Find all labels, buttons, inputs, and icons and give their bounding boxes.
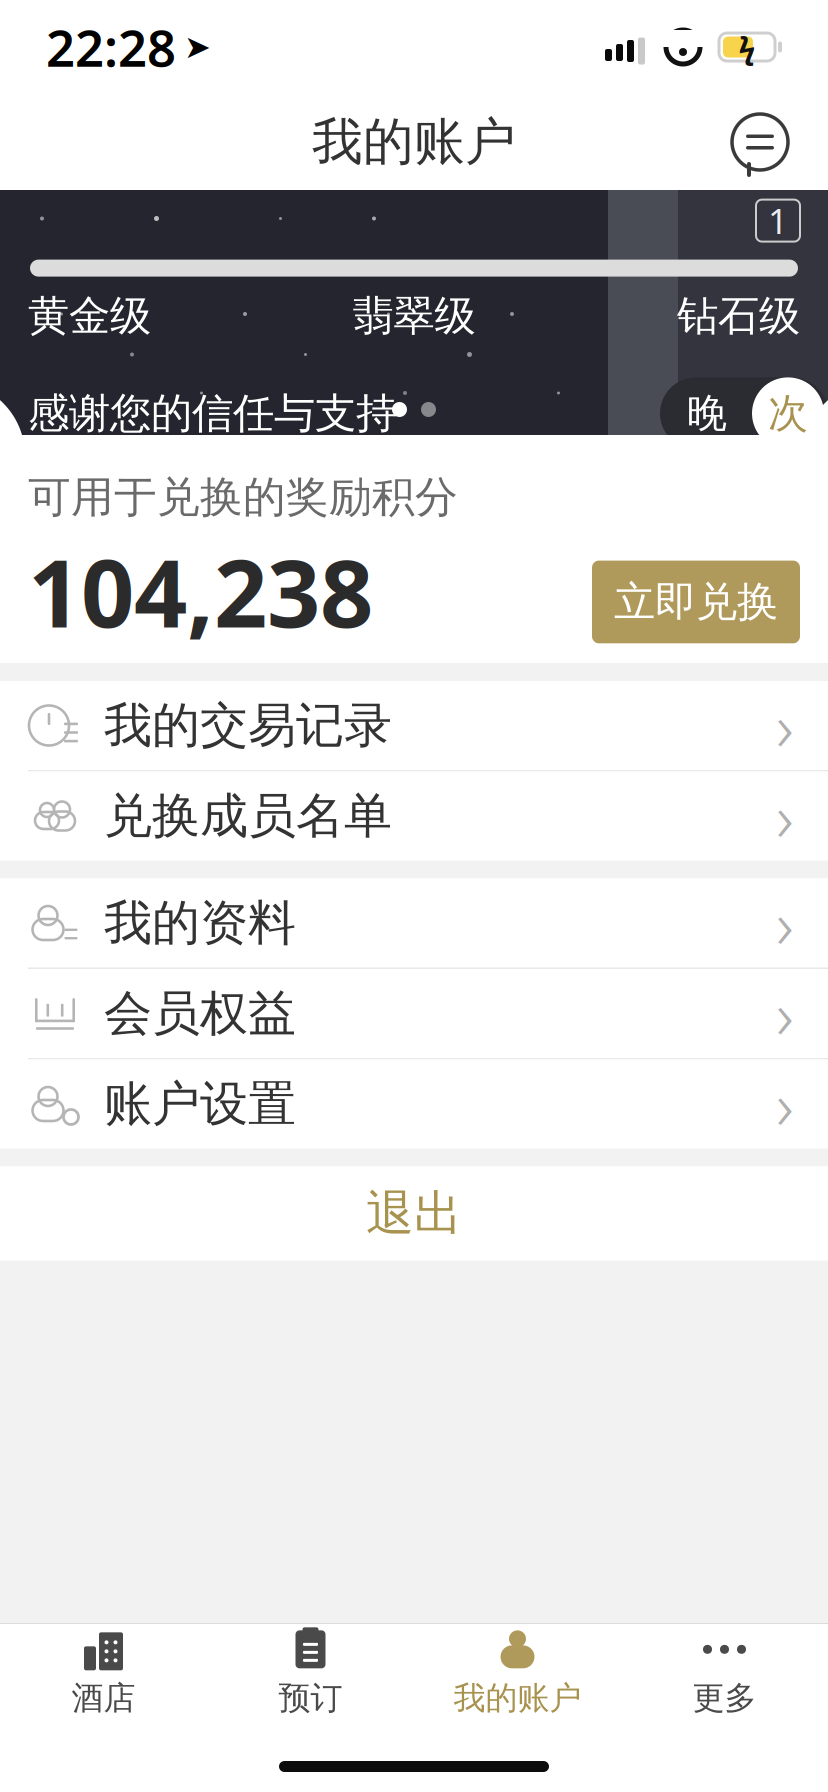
button[interactable]: 我的交易记录: [0, 681, 828, 771]
button[interactable]: 账户设置: [0, 1059, 828, 1148]
staticText: 可用于兑换的奖励积分: [28, 471, 458, 523]
staticText: 钻石级: [677, 291, 800, 341]
staticText: 次: [768, 389, 808, 438]
button[interactable]: 会员权益: [0, 969, 828, 1059]
staticText: 我的资料: [104, 893, 296, 952]
button[interactable]: 我的资料: [0, 878, 828, 969]
staticText: 感谢您的信任与支持: [28, 388, 397, 439]
button[interactable]: 我的账户: [414, 1624, 621, 1722]
staticText: 黄金级: [28, 291, 151, 341]
staticText: ›: [776, 879, 794, 967]
staticText: 我的账户: [312, 111, 516, 173]
button[interactable]: 预订: [207, 1624, 414, 1722]
staticText: 我的交易记录: [104, 696, 392, 755]
staticText: 我的账户: [453, 1678, 581, 1718]
staticText: ›: [776, 969, 794, 1058]
staticText: 翡翠级: [352, 291, 475, 341]
staticText: 1: [768, 198, 788, 244]
staticText: 预订: [278, 1678, 342, 1718]
staticText: ›: [776, 1060, 794, 1148]
staticText: 退出: [366, 1184, 462, 1243]
staticText: ›: [776, 772, 794, 860]
button[interactable]: 退出: [0, 1166, 828, 1260]
button[interactable]: 立即兑换: [592, 561, 800, 643]
button[interactable]: 兑换成员名单: [0, 771, 828, 860]
staticText: 会员权益: [104, 984, 296, 1043]
staticText: 账户设置: [104, 1074, 296, 1133]
staticText: 晚: [687, 389, 727, 438]
staticText: 兑换成员名单: [104, 786, 392, 845]
button[interactable]: 酒店: [0, 1624, 207, 1722]
staticText: 更多: [692, 1678, 756, 1718]
staticText: 22:28: [46, 13, 176, 81]
staticText: 酒店: [71, 1678, 135, 1718]
staticText: 立即兑换: [614, 577, 778, 627]
staticText: ➤: [184, 29, 211, 65]
button[interactable]: 消息: [722, 104, 798, 180]
staticText: 104,238: [28, 529, 373, 653]
button[interactable]: 更多: [621, 1624, 828, 1722]
staticText: ›: [776, 681, 794, 770]
staticText: ϟ: [738, 27, 755, 67]
button[interactable]: 晚: [660, 377, 828, 449]
